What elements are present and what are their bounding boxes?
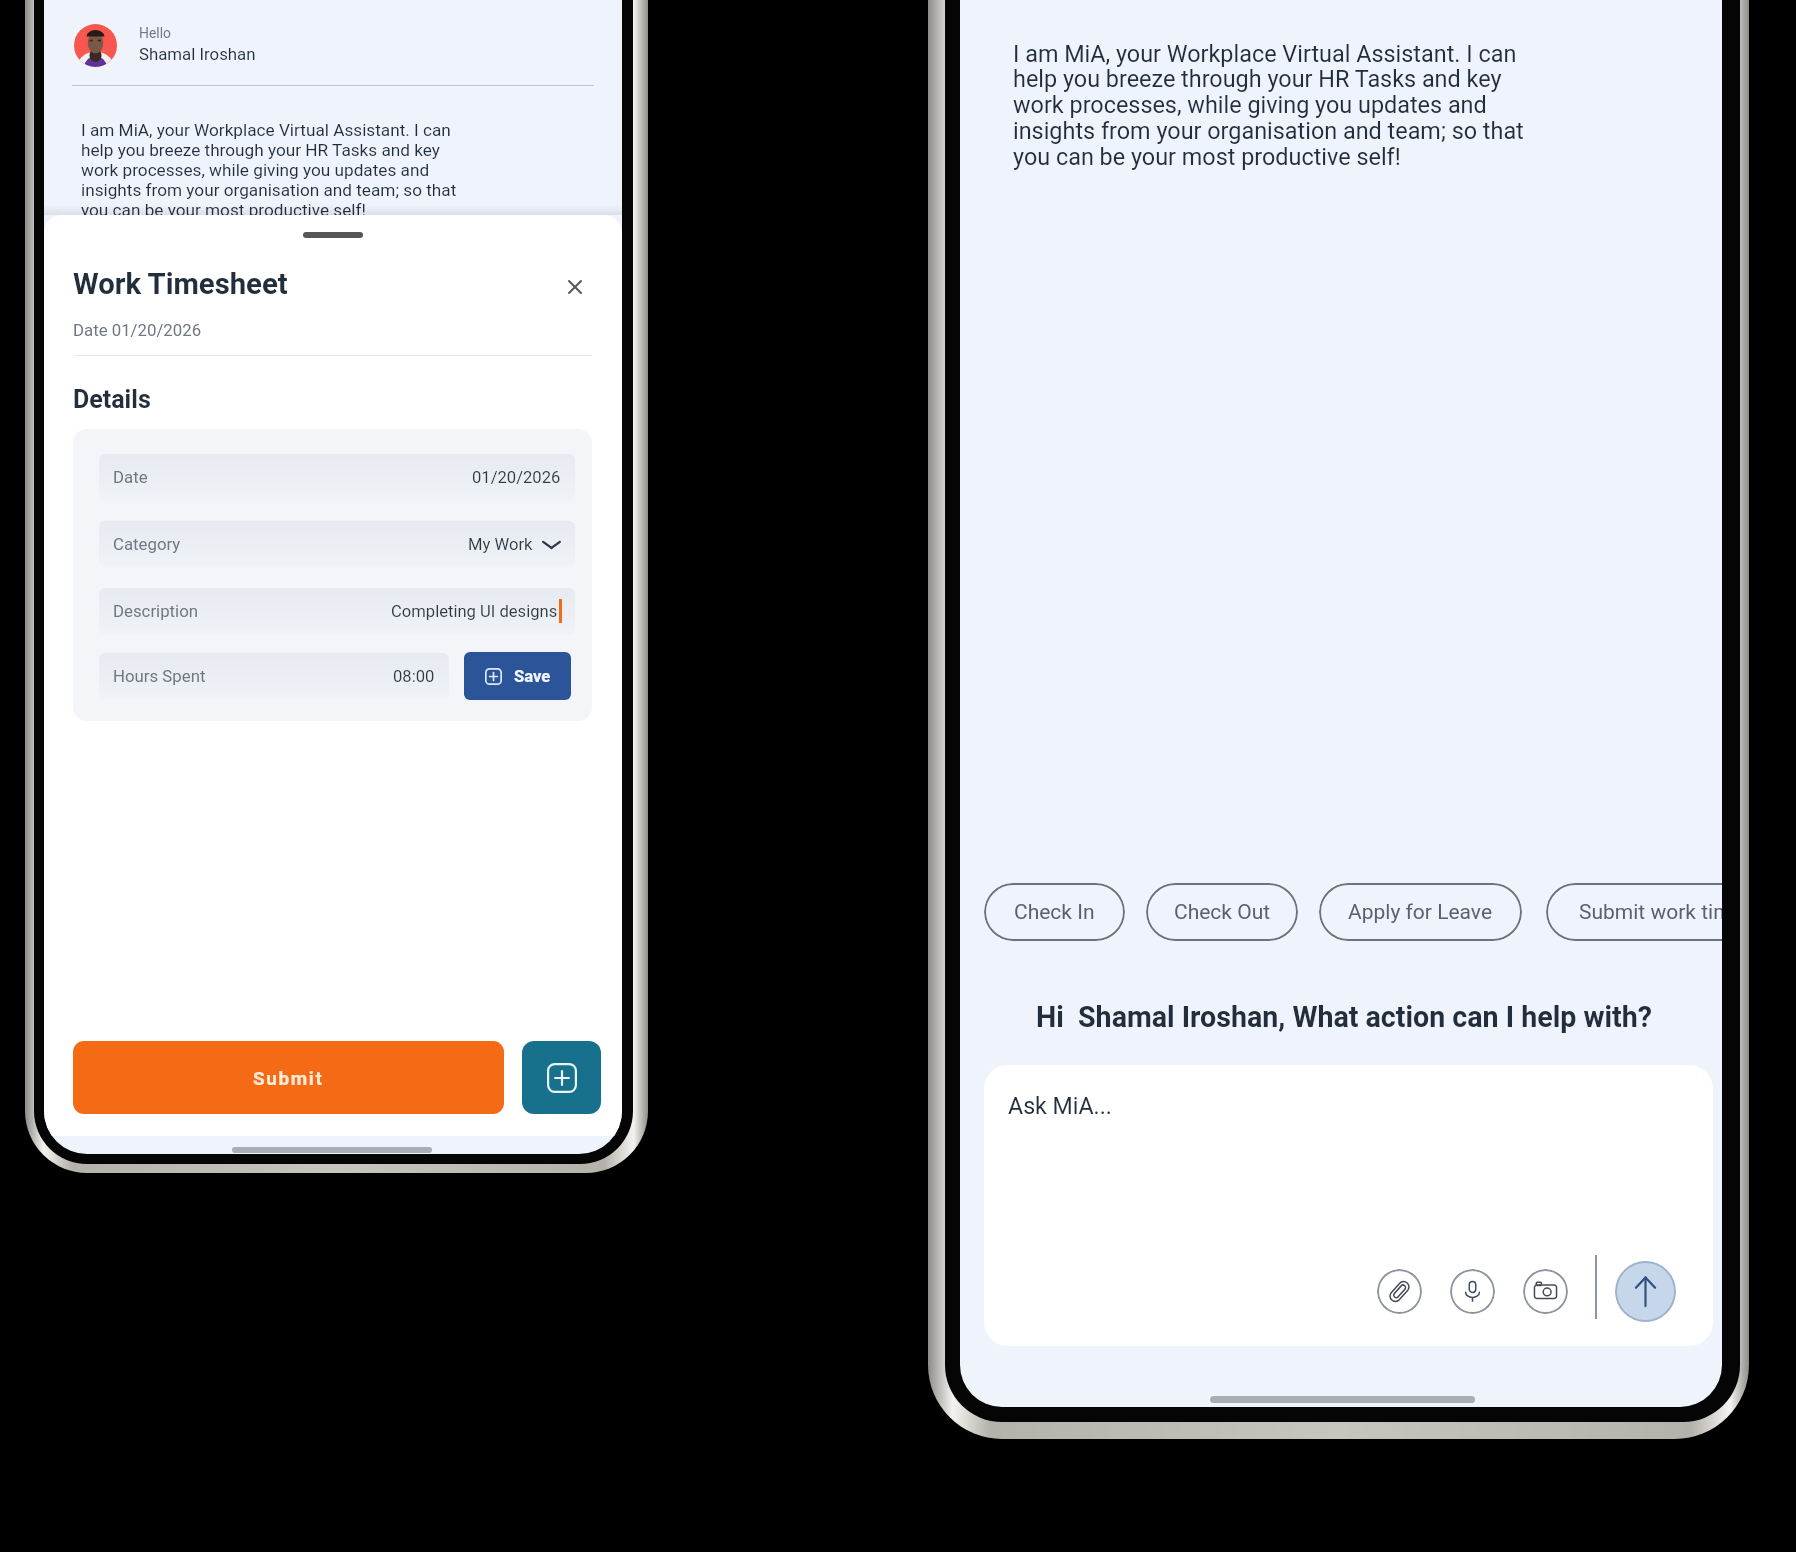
button[interactable]: Check Out <box>1146 883 1298 941</box>
button[interactable]: Hours Spent <box>99 653 449 699</box>
staticText: Date 01/20/2026 <box>73 320 202 340</box>
staticText: I am MiA, your Workplace Virtual Assista… <box>81 120 476 220</box>
staticText: 01/20/2026 <box>472 468 561 487</box>
button[interactable]: Submit <box>73 1041 504 1114</box>
staticText: Category <box>113 534 181 554</box>
staticText: Shamal Iroshan <box>139 44 256 64</box>
staticText: I am MiA, your Workplace Virtual Assista… <box>1013 40 1540 171</box>
staticText: Check Out <box>1174 900 1271 925</box>
staticText: Completing UI designs <box>391 602 558 621</box>
staticText: Hours Spent <box>113 666 206 686</box>
staticText: Details <box>73 385 151 414</box>
button[interactable]: Attach <box>1377 1269 1422 1314</box>
staticText: Hi Shamal Iroshan, What action can I hel… <box>1036 1000 1652 1034</box>
button[interactable]: Voice <box>1450 1269 1495 1314</box>
staticText: Check In <box>1014 900 1095 925</box>
button[interactable]: Camera <box>1523 1269 1568 1314</box>
button[interactable]: Category <box>99 521 575 567</box>
staticText: Apply for Leave <box>1348 900 1493 925</box>
staticText: Description <box>113 601 199 621</box>
button[interactable]: Send <box>1615 1261 1676 1322</box>
staticText: Hello <box>139 25 171 41</box>
button[interactable]: Close <box>559 271 591 303</box>
staticText: Ask MiA... <box>1008 1092 1112 1119</box>
staticText: Work Timesheet <box>73 267 288 301</box>
staticText: Date <box>113 467 148 487</box>
button[interactable]: Check In <box>984 883 1125 941</box>
button[interactable]: Submit work time <box>1546 883 1722 941</box>
button[interactable]: Apply for Leave <box>1319 883 1522 941</box>
staticText: Submit <box>253 1067 324 1089</box>
button[interactable]: Date <box>99 454 575 500</box>
staticText: Save <box>514 667 551 686</box>
staticText: Submit work time <box>1579 900 1722 925</box>
staticText: My Work <box>468 535 533 554</box>
button[interactable]: Save <box>464 652 571 700</box>
button[interactable]: Add entry <box>522 1041 601 1114</box>
staticText: 08:00 <box>393 667 435 686</box>
button[interactable]: Hello <box>70 19 370 71</box>
button[interactable]: Description <box>99 588 575 634</box>
